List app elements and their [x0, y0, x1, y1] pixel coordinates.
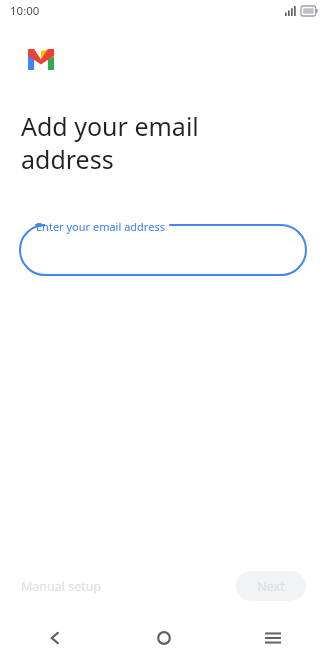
button[interactable]: Enter your email address — [20, 217, 306, 275]
button[interactable]: Home — [109, 614, 218, 662]
staticText: Next — [257, 578, 285, 595]
button[interactable]: Back — [0, 614, 109, 662]
staticText: Add your email address — [21, 109, 199, 176]
staticText: 10:00 — [10, 3, 40, 19]
staticText: Manual setup — [21, 578, 102, 595]
staticText: Enter your email address — [36, 219, 165, 234]
button[interactable]: Next — [236, 571, 306, 601]
button[interactable]: Manual setup — [0, 574, 110, 599]
button[interactable]: Recent apps — [218, 614, 327, 662]
